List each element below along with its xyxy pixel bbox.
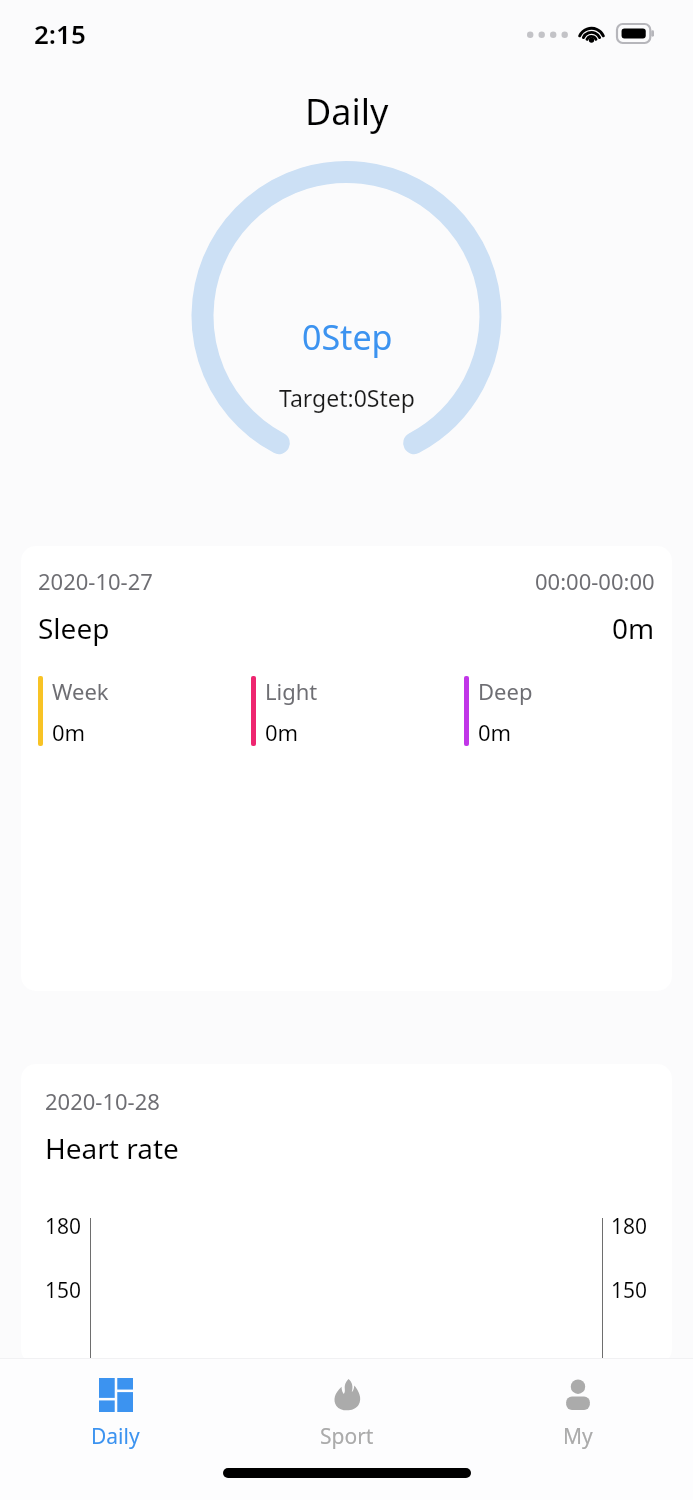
staticText: Target:0Step <box>279 382 415 413</box>
staticText: 00:00-00:00 <box>535 566 655 596</box>
staticText: 0m <box>478 717 512 747</box>
staticText: Heart rate <box>45 1129 179 1167</box>
staticText: 150 <box>611 1276 648 1305</box>
staticText: 150 <box>45 1276 82 1305</box>
staticText: 0m <box>612 609 655 647</box>
staticText: Daily <box>305 87 389 136</box>
button[interactable]: My <box>462 1371 693 1451</box>
other: My <box>554 1371 602 1419</box>
staticText: 2020-10-28 <box>45 1086 160 1116</box>
staticText: 180 <box>45 1212 82 1241</box>
button[interactable]: Daily <box>0 1371 231 1451</box>
staticText: 0Step <box>302 314 393 360</box>
staticText: 2020-10-27 <box>38 566 153 596</box>
staticText: Daily <box>91 1422 140 1451</box>
button[interactable]: Sport <box>231 1371 462 1451</box>
other: Sport <box>323 1371 371 1419</box>
button[interactable]: 2020-10-28 <box>21 1064 672 1364</box>
staticText: 180 <box>611 1212 648 1241</box>
staticText: 0m <box>265 717 299 747</box>
staticText: Sport <box>320 1422 374 1451</box>
staticText: Deep <box>478 676 533 706</box>
button[interactable]: 2020-10-27 <box>21 546 672 991</box>
other: Daily <box>92 1371 140 1419</box>
staticText: My <box>563 1422 593 1451</box>
staticText: Week <box>52 676 109 706</box>
staticText: Light <box>265 676 318 706</box>
staticText: 0m <box>52 717 86 747</box>
staticText: 2:15 <box>34 16 86 51</box>
staticText: Sleep <box>38 609 110 647</box>
